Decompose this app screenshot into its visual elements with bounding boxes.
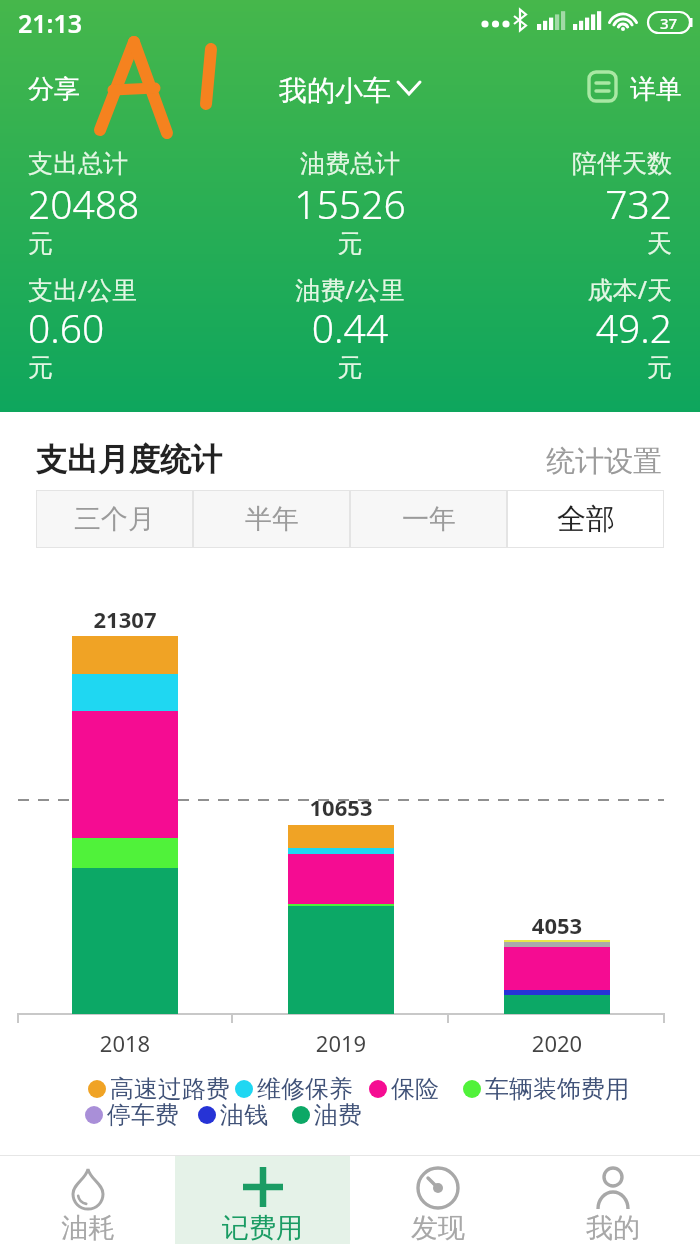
staticText: 21307	[65, 604, 185, 634]
staticText: 732	[372, 177, 672, 230]
staticText: 15526	[175, 177, 525, 230]
staticText: 车辆装饰费用	[485, 1074, 629, 1104]
staticText: 2018	[65, 1028, 185, 1058]
staticText: 支出月度统计	[36, 440, 222, 479]
button[interactable]: 我的小车	[279, 73, 391, 108]
staticText: 分享	[28, 73, 80, 106]
staticText: 元	[372, 352, 672, 383]
staticText: 陪伴天数	[372, 148, 672, 179]
staticText: 49.2	[372, 301, 672, 354]
button[interactable]: 分享	[28, 73, 80, 106]
staticText: 0.44	[175, 301, 525, 354]
staticText: 停车费	[107, 1100, 179, 1130]
staticText: 保险	[391, 1074, 439, 1104]
button[interactable]: 详单	[630, 73, 682, 106]
staticText: 20488	[28, 177, 140, 230]
staticText: 维修保养	[257, 1074, 353, 1104]
staticText: 一年	[402, 502, 456, 536]
staticText: 三个月	[74, 502, 155, 536]
button[interactable]: 全部	[507, 490, 664, 548]
staticText: 统计设置	[546, 443, 662, 480]
staticText: 油钱	[220, 1100, 268, 1130]
staticText: 10653	[281, 792, 401, 822]
staticText: 支出/公里	[28, 272, 138, 306]
staticText: 37	[660, 13, 678, 33]
staticText: 我的	[586, 1211, 640, 1244]
staticText: 4053	[497, 910, 617, 940]
button[interactable]: 发现	[350, 1156, 525, 1244]
staticText: 油费	[314, 1100, 362, 1130]
staticText: 我的小车	[279, 73, 391, 108]
staticText: 元	[175, 228, 525, 259]
staticText: 元	[28, 228, 53, 259]
button[interactable]: 半年	[193, 490, 350, 548]
staticText: 油费总计	[175, 148, 525, 179]
staticText: 发现	[411, 1211, 465, 1244]
button[interactable]: 记费用	[175, 1156, 350, 1244]
button[interactable]: 一年	[350, 490, 507, 548]
staticText: 高速过路费	[110, 1074, 230, 1104]
staticText: 2019	[281, 1028, 401, 1058]
staticText: 成本/天	[372, 272, 672, 306]
button[interactable]: 三个月	[36, 490, 193, 548]
staticText: 油费/公里	[175, 272, 525, 306]
staticText: 全部	[557, 501, 615, 538]
staticText: 0.60	[28, 301, 105, 354]
button[interactable]: 我的	[525, 1156, 700, 1244]
staticText: 天	[372, 228, 672, 259]
button[interactable]: 统计设置	[546, 443, 662, 480]
staticText: 2020	[497, 1028, 617, 1058]
button[interactable]: 油耗	[0, 1156, 175, 1244]
staticText: 详单	[630, 73, 682, 106]
staticText: 油耗	[61, 1211, 115, 1244]
staticText: 21:13	[18, 6, 83, 40]
staticText: 半年	[245, 502, 299, 536]
staticText: 元	[28, 352, 53, 383]
staticText: 记费用	[222, 1211, 303, 1244]
staticText: 支出总计	[28, 148, 128, 179]
staticText: 元	[175, 352, 525, 383]
